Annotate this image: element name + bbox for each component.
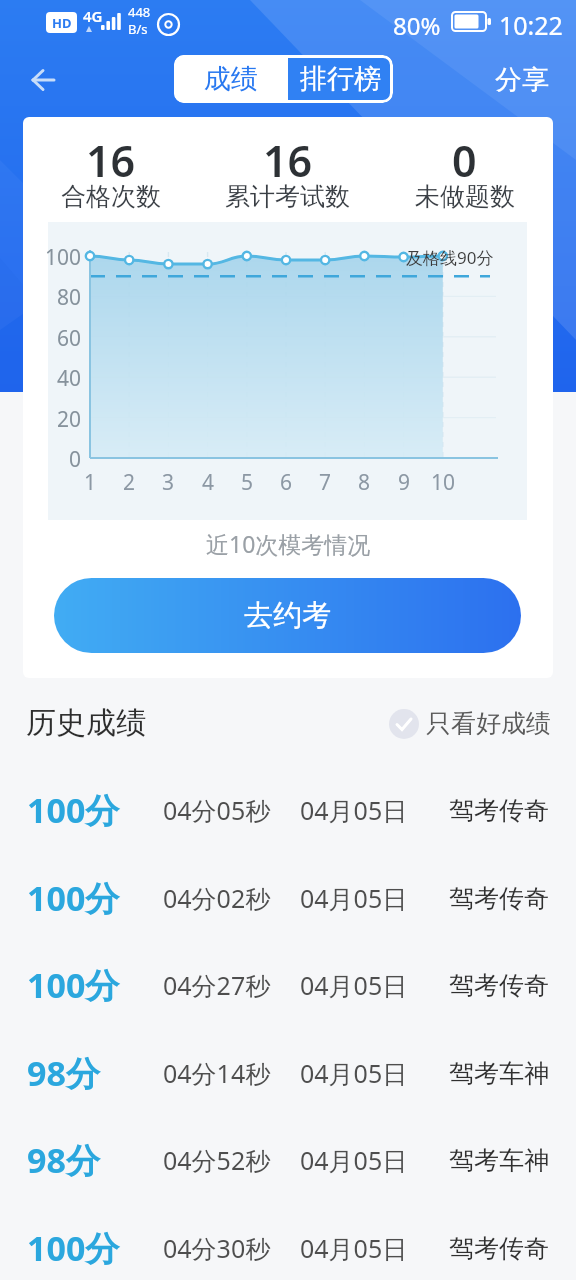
staticText: 只看好成绩	[426, 708, 551, 739]
button[interactable]: 分享	[484, 52, 560, 108]
staticText: 未做题数	[415, 181, 515, 212]
staticText: 驾考传奇	[449, 970, 549, 1001]
staticText: 合格次数	[61, 181, 161, 212]
staticText: 100分	[27, 962, 120, 1008]
staticText: 448	[128, 3, 151, 21]
staticText: 04月05日	[300, 1231, 408, 1265]
staticText: 04分30秒	[163, 1231, 271, 1265]
staticText: 8	[358, 468, 371, 496]
button[interactable]: 100分	[0, 766, 576, 854]
button[interactable]	[20, 58, 68, 102]
button[interactable]: 100分	[0, 854, 576, 942]
staticText: 驾考车神	[449, 1145, 549, 1176]
staticText: 5	[241, 468, 254, 496]
staticText: 100分	[27, 787, 120, 833]
button[interactable]: 只看好成绩	[389, 708, 551, 739]
staticText: 4	[202, 468, 215, 496]
button[interactable]: 排行榜	[288, 55, 393, 103]
staticText: 2	[123, 468, 136, 496]
staticText: 10:22	[499, 8, 563, 42]
staticText: 04分14秒	[163, 1056, 271, 1090]
staticText: HD	[52, 14, 72, 32]
staticText: 累计考试数	[225, 181, 350, 212]
staticText: 7	[319, 468, 332, 496]
staticText: 历史成绩	[26, 704, 146, 742]
staticText: 98分	[27, 1137, 100, 1183]
staticText: 6	[280, 468, 293, 496]
staticText: 3	[162, 468, 175, 496]
button[interactable]: 成绩	[174, 55, 288, 103]
staticText: 98分	[27, 1050, 100, 1096]
staticText: 驾考传奇	[449, 1233, 549, 1264]
staticText: 04月05日	[300, 1056, 408, 1090]
staticText: 04分52秒	[163, 1143, 271, 1177]
button[interactable]: 100分	[0, 941, 576, 1029]
staticText: 驾考车神	[449, 1058, 549, 1089]
staticText: 16	[263, 131, 313, 190]
staticText: 驾考传奇	[449, 795, 549, 826]
staticText: B/s	[128, 20, 148, 38]
staticText: 10	[431, 468, 456, 496]
staticText: 100分	[27, 1225, 120, 1271]
staticText: 16	[86, 131, 136, 190]
staticText: 及格线90分	[406, 246, 494, 269]
staticText: 去约考	[244, 597, 331, 634]
staticText: 20	[57, 405, 82, 431]
staticText: 04分27秒	[163, 968, 271, 1002]
staticText: 80	[57, 283, 82, 309]
staticText: 0	[452, 131, 477, 190]
button[interactable]: 98分	[0, 1116, 576, 1204]
staticText: 9	[398, 468, 411, 496]
staticText: 排行榜	[300, 62, 381, 96]
staticText: 分享	[495, 63, 549, 97]
staticText: 成绩	[204, 62, 258, 96]
staticText: 0	[69, 445, 82, 471]
staticText: 04月05日	[300, 793, 408, 827]
staticText: 近10次模考情况	[206, 528, 371, 559]
button[interactable]: 98分	[0, 1029, 576, 1117]
button[interactable]: 100分	[0, 1204, 576, 1280]
staticText: 04月05日	[300, 881, 408, 915]
staticText: 40	[57, 364, 82, 390]
staticText: 04分05秒	[163, 793, 271, 827]
staticText: 04分02秒	[163, 881, 271, 915]
staticText: 1	[84, 468, 97, 496]
staticText: 04月05日	[300, 968, 408, 1002]
staticText: 100分	[27, 875, 120, 921]
staticText: 04月05日	[300, 1143, 408, 1177]
button[interactable]: 去约考	[54, 578, 521, 653]
staticText: 60	[57, 324, 82, 350]
staticText: 100	[45, 243, 82, 269]
staticText: 80%	[393, 9, 441, 42]
staticText: 驾考传奇	[449, 883, 549, 914]
staticText: 4G	[83, 6, 103, 26]
